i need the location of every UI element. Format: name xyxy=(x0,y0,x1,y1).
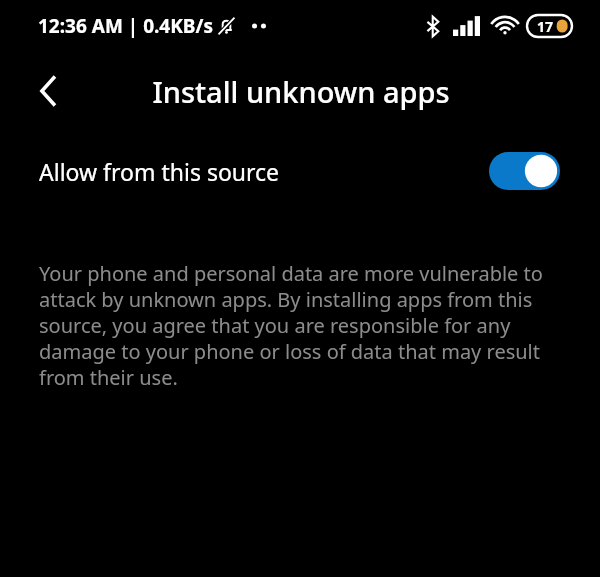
staticText: Allow from this source xyxy=(39,156,489,187)
staticText: Your phone and personal data are more vu… xyxy=(39,260,568,391)
button[interactable]: Back xyxy=(20,63,76,119)
staticText: 12:36 AM | 0.4KB/s xyxy=(38,13,213,39)
staticText: Install unknown apps xyxy=(152,72,450,111)
staticText: 17 xyxy=(537,17,554,36)
button[interactable]: Allow from this source xyxy=(0,130,600,212)
button[interactable]: Allow from this source toggle xyxy=(489,152,560,190)
